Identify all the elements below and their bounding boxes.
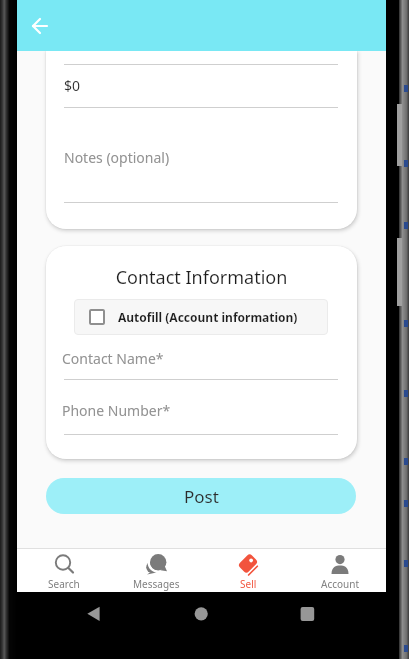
button[interactable] <box>140 592 263 636</box>
staticText: Contact Information <box>46 265 357 290</box>
staticText: $0 <box>64 76 81 95</box>
button[interactable] <box>263 592 386 636</box>
button[interactable]: Account <box>294 549 386 592</box>
staticText: Autofill (Account information) <box>118 309 298 325</box>
staticText: Phone Number* <box>62 401 171 420</box>
staticText: Post <box>184 485 219 508</box>
button[interactable]: Sell <box>202 549 294 592</box>
staticText: Account <box>321 577 360 591</box>
button[interactable]: Messages <box>110 549 202 592</box>
button[interactable] <box>17 592 140 636</box>
staticText: Notes (optional) <box>64 148 170 167</box>
staticText: Messages <box>133 577 180 591</box>
button[interactable] <box>26 12 54 40</box>
staticText: Sell <box>240 577 257 591</box>
staticText: Contact Name* <box>62 349 164 368</box>
button[interactable]: Post <box>46 478 356 514</box>
staticText: Search <box>48 577 80 591</box>
button[interactable]: Search <box>17 549 110 592</box>
button[interactable]: Autofill (Account information) <box>74 299 328 335</box>
